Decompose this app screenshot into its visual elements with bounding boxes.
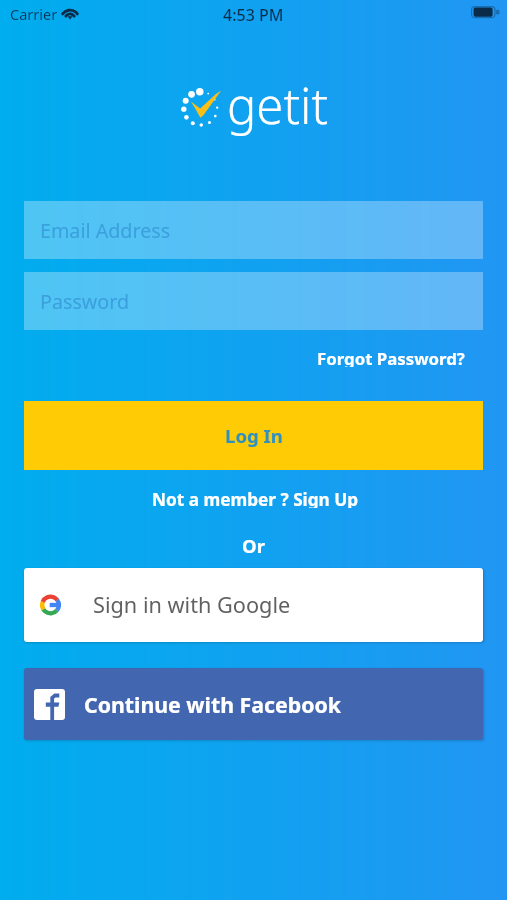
staticText: Not a member ? Sign Up <box>152 488 359 508</box>
staticText: getit <box>227 72 329 139</box>
button[interactable]: Password <box>24 272 483 330</box>
staticText: Carrier <box>10 4 58 24</box>
staticText: Forgot Password? <box>317 347 465 367</box>
staticText: 4:53 PM <box>223 4 284 26</box>
button[interactable]: Email Address <box>24 201 483 259</box>
button[interactable]: Continue with Facebook <box>24 668 483 740</box>
staticText: Log In <box>225 423 283 448</box>
button[interactable]: Sign in with Google <box>24 568 483 642</box>
button[interactable]: Not a member ? Sign Up <box>149 485 362 511</box>
staticText: Email Address <box>40 217 171 244</box>
staticText: Sign in with Google <box>93 590 291 620</box>
button[interactable]: Log In <box>24 401 483 470</box>
staticText: Continue with Facebook <box>84 690 342 719</box>
button[interactable]: Forgot Password? <box>314 344 468 370</box>
staticText: Or <box>242 533 265 558</box>
staticText: Password <box>40 288 130 315</box>
